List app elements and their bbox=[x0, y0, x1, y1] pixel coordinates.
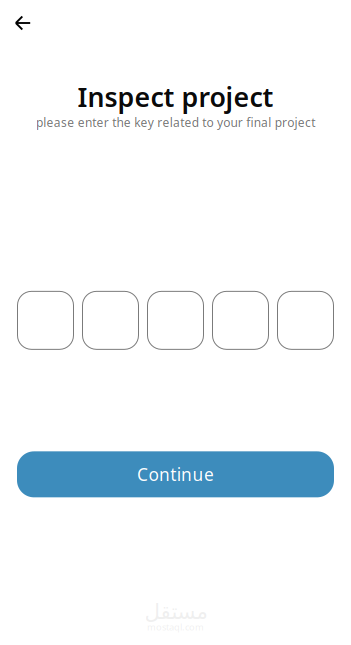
button[interactable]: Key digit 2 bbox=[82, 291, 138, 349]
staticText: Continue bbox=[137, 463, 214, 486]
staticText: mostaql.com bbox=[147, 621, 204, 633]
button[interactable]: Back bbox=[5, 8, 41, 38]
button[interactable]: Continue bbox=[17, 451, 334, 497]
staticText: Inspect project bbox=[77, 79, 273, 114]
button[interactable]: Key digit 5 bbox=[277, 291, 333, 349]
button[interactable]: Key digit 4 bbox=[212, 291, 268, 349]
button[interactable]: Key digit 1 bbox=[17, 291, 73, 349]
staticText: مستقل bbox=[144, 599, 207, 624]
staticText: please enter the key related to your fin… bbox=[36, 114, 315, 130]
button[interactable]: Key digit 3 bbox=[147, 291, 203, 349]
